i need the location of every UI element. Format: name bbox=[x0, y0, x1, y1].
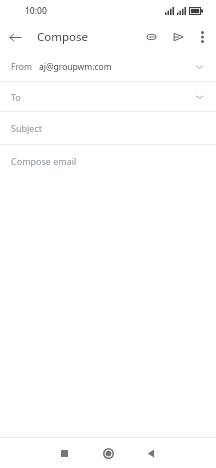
button[interactable]: More options bbox=[191, 26, 213, 48]
staticText: Subject bbox=[11, 122, 43, 134]
button[interactable]: Compose email bbox=[0, 145, 216, 177]
button[interactable]: To bbox=[0, 82, 216, 111]
button[interactable]: Back bbox=[5, 24, 26, 50]
staticText: To bbox=[11, 91, 21, 103]
button[interactable]: Home bbox=[96, 441, 120, 465]
button[interactable]: Subject bbox=[0, 112, 216, 144]
staticText: 10:00 bbox=[25, 5, 47, 17]
button[interactable]: Back bbox=[139, 441, 163, 465]
button[interactable]: Recent apps bbox=[52, 441, 76, 465]
button[interactable]: From bbox=[0, 52, 216, 81]
button[interactable]: Attach file bbox=[140, 26, 162, 48]
staticText: Compose bbox=[37, 29, 89, 45]
button[interactable]: Send bbox=[167, 26, 189, 48]
staticText: aj@groupwm.com bbox=[39, 61, 112, 73]
staticText: Compose email bbox=[11, 155, 77, 167]
staticText: From bbox=[11, 61, 32, 73]
